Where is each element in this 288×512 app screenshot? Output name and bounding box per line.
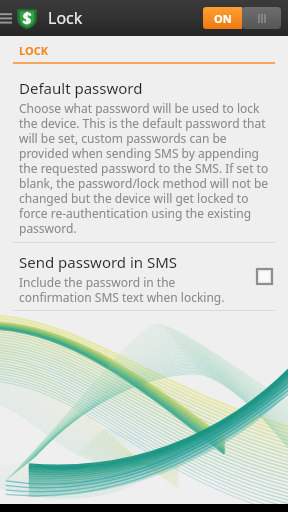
button[interactable]: App logo: [12, 3, 42, 33]
staticText: Choose what password will be used to loc…: [19, 100, 274, 236]
staticText: Include the password in the confirmation…: [19, 274, 225, 305]
staticText: Lock: [48, 7, 83, 29]
staticText: ON: [214, 11, 232, 26]
staticText: LOCK: [19, 43, 48, 58]
button[interactable]: Enabled toggle: [203, 7, 281, 29]
button[interactable]: Send password in SMS: [0, 252, 288, 305]
button[interactable]: Default password: [0, 78, 288, 236]
button[interactable]: Menu: [0, 0, 12, 36]
staticText: Default password: [19, 78, 143, 98]
staticText: Send password in SMS: [19, 252, 178, 272]
